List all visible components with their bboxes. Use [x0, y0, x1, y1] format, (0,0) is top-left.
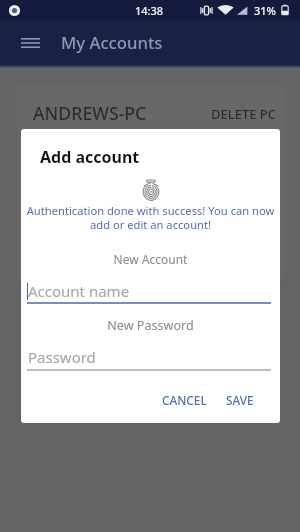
staticText: 31%: [254, 3, 276, 18]
staticText: Account name: [28, 281, 130, 301]
button[interactable]: CANCEL: [154, 384, 215, 416]
button[interactable]: Open navigation menu: [14, 27, 46, 59]
button[interactable]: SAVE: [218, 384, 262, 416]
button[interactable]: DELETE PC: [211, 105, 277, 123]
staticText: Add account: [40, 146, 140, 168]
staticText: New Account: [21, 251, 280, 267]
staticText: 14:38: [135, 3, 164, 18]
staticText: DELETE PC: [211, 105, 277, 123]
staticText: Password: [28, 347, 96, 367]
staticText: New Password: [21, 317, 280, 334]
staticText: My Accounts: [61, 31, 163, 54]
staticText: ANDREWS-PC: [33, 101, 147, 125]
staticText: SAVE: [226, 392, 254, 408]
staticText: CANCEL: [162, 392, 207, 408]
button[interactable]: ANDREWS-PC: [17, 85, 285, 280]
staticText: Authentication done with success! You ca…: [25, 203, 276, 232]
